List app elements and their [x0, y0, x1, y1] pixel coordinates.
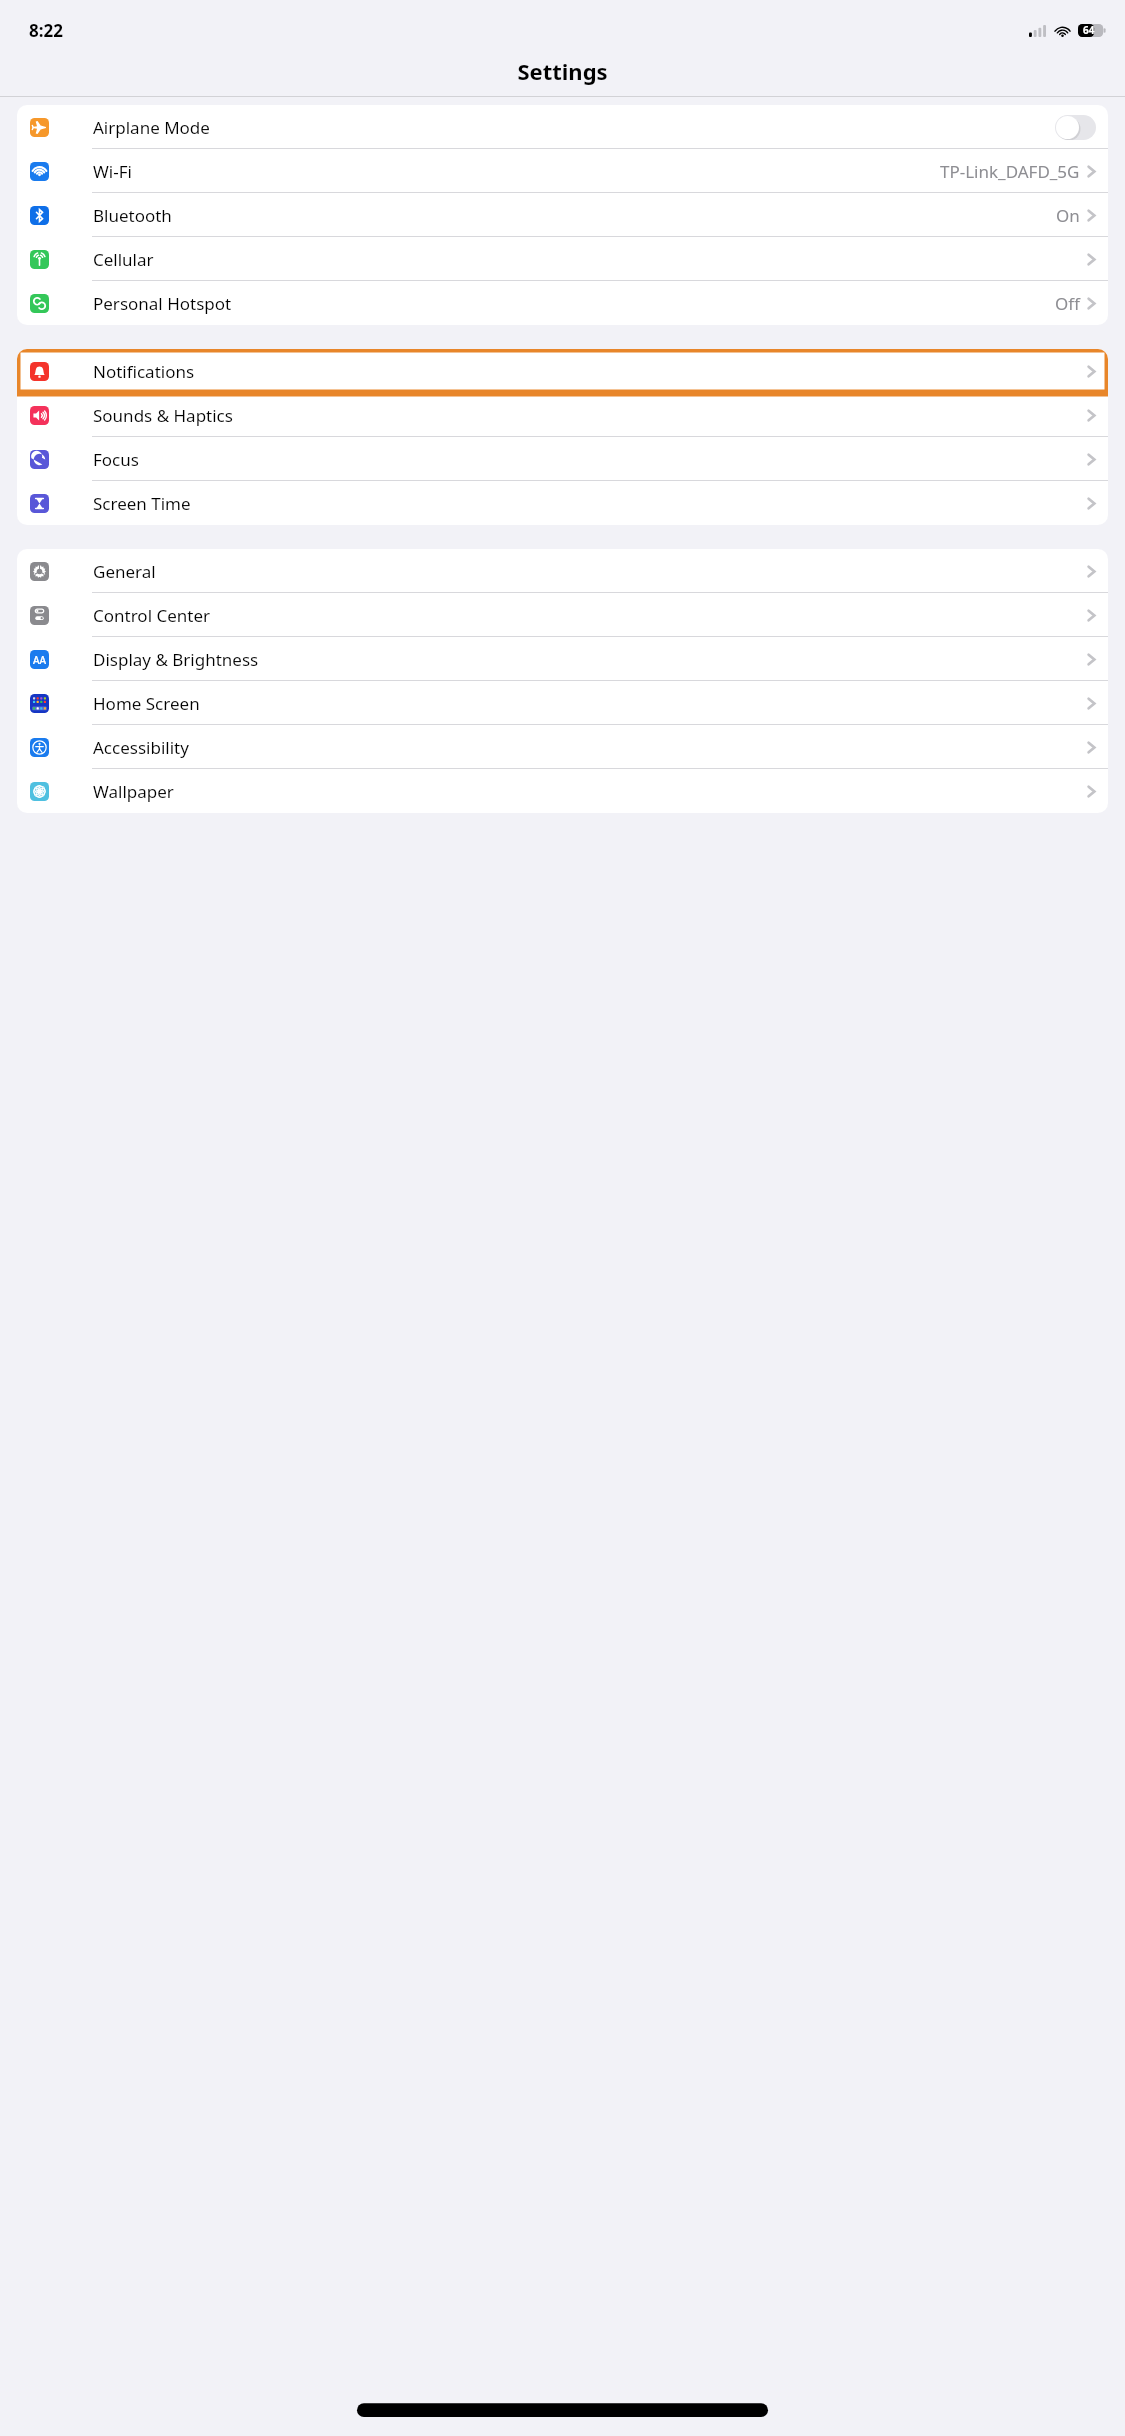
staticText: Personal Hotspot [93, 292, 232, 315]
staticText: Settings [517, 56, 608, 86]
button[interactable]: Airplane Mode [17, 105, 1108, 149]
staticText: Sounds & Haptics [93, 404, 233, 427]
button[interactable]: Screen Time [17, 481, 1108, 525]
staticText: TP-Link_DAFD_5G [940, 160, 1080, 183]
staticText: Wallpaper [93, 780, 174, 803]
staticText: 8:22 [29, 19, 63, 42]
button[interactable]: Focus [17, 437, 1108, 481]
staticText: Notifications [93, 360, 195, 383]
staticText: Focus [93, 448, 139, 471]
staticText: Control Center [93, 604, 211, 627]
button[interactable]: AA [17, 637, 1108, 681]
button[interactable]: Wi-Fi [17, 149, 1108, 193]
button[interactable]: Airplane Mode off [1055, 115, 1096, 140]
staticText: Off [1055, 292, 1080, 315]
staticText: Airplane Mode [93, 116, 210, 139]
staticText: Bluetooth [93, 204, 172, 227]
button[interactable]: Personal Hotspot [17, 281, 1108, 325]
button[interactable]: Sounds & Haptics [17, 393, 1108, 437]
staticText: Accessibility [93, 736, 189, 759]
button[interactable]: Accessibility [17, 725, 1108, 769]
staticText: Cellular [93, 248, 154, 271]
button[interactable]: Home Screen [17, 681, 1108, 725]
button[interactable]: Control Center [17, 593, 1108, 637]
staticText: Home Screen [93, 692, 200, 715]
button[interactable]: Cellular [17, 237, 1108, 281]
button[interactable]: Wallpaper [17, 769, 1108, 813]
staticText: General [93, 560, 156, 583]
button[interactable]: Bluetooth [17, 193, 1108, 237]
button[interactable]: Notifications [17, 349, 1108, 393]
staticText: Wi-Fi [93, 160, 132, 183]
staticText: Screen Time [93, 492, 191, 515]
button[interactable]: General [17, 549, 1108, 593]
staticText: AA [33, 653, 47, 667]
staticText: 64 [1083, 23, 1095, 37]
staticText: On [1056, 204, 1080, 227]
staticText: Display & Brightness [93, 648, 259, 671]
